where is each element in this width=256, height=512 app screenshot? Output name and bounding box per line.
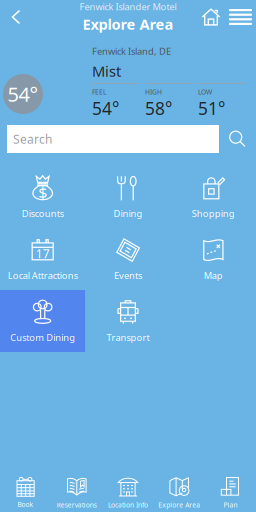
button[interactable]: Custom Dining (0, 290, 85, 352)
button[interactable]: Shopping (171, 166, 256, 228)
button[interactable]: Transport (85, 290, 171, 352)
staticText: FEEL (92, 87, 106, 96)
staticText: Map (204, 269, 223, 282)
button[interactable]: Book (0, 476, 51, 509)
staticText: Fenwick Islander Motel (79, 0, 176, 13)
button[interactable]: Back (0, 0, 32, 34)
button[interactable]: Menu (225, 0, 256, 34)
staticText: HIGH (145, 87, 162, 96)
staticText: Fenwick Island, DE (92, 45, 171, 57)
button[interactable]: $ (0, 166, 85, 228)
staticText: Discounts (22, 207, 64, 220)
button[interactable]: Search (219, 125, 256, 153)
button[interactable]: Location Info (102, 476, 154, 509)
button[interactable]: Search (7, 125, 219, 153)
staticText: 54° (7, 81, 38, 107)
staticText: Explore Area (82, 14, 173, 34)
staticText: 58° (145, 97, 172, 120)
staticText: Explore Area (158, 501, 200, 509)
button[interactable]: Plan (205, 476, 256, 509)
staticText: LOW (198, 87, 212, 96)
button[interactable]: Dining (85, 166, 171, 228)
staticText: Mist (92, 61, 121, 81)
button[interactable]: Home (197, 0, 225, 34)
staticText: Location Info (108, 501, 148, 509)
staticText: 54° (92, 97, 119, 120)
staticText: Reservations (57, 501, 97, 509)
staticText: Book (18, 500, 34, 509)
staticText: Dining (113, 207, 142, 220)
staticText: 17 (36, 245, 50, 261)
staticText: Local Attractions (8, 269, 78, 282)
staticText: Custom Dining (10, 331, 75, 344)
button[interactable]: Events (85, 228, 171, 290)
staticText: $ (38, 182, 47, 203)
staticText: Transport (106, 331, 149, 344)
staticText: Search (13, 131, 52, 147)
button[interactable]: Reservations (51, 476, 102, 509)
staticText: 51° (198, 97, 225, 120)
button[interactable]: Explore Area (154, 476, 205, 509)
button[interactable]: 17 (0, 228, 85, 290)
button[interactable]: Map (171, 228, 256, 290)
staticText: Events (114, 269, 142, 282)
staticText: Plan (223, 501, 237, 509)
staticText: Shopping (192, 207, 235, 220)
